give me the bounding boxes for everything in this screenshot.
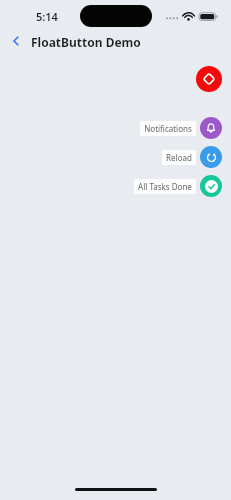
staticText: Notifications (144, 123, 192, 134)
button[interactable]: Open actions (196, 66, 222, 92)
staticText: 5:14 (36, 9, 58, 24)
button[interactable]: All Tasks Done (0, 175, 231, 197)
button[interactable]: Reload (0, 146, 231, 168)
staticText: FloatButton Demo (31, 34, 141, 50)
staticText: All Tasks Done (138, 181, 192, 192)
button[interactable]: Back (4, 30, 28, 52)
staticText: Reload (166, 152, 192, 163)
button[interactable]: Notifications (0, 117, 231, 139)
